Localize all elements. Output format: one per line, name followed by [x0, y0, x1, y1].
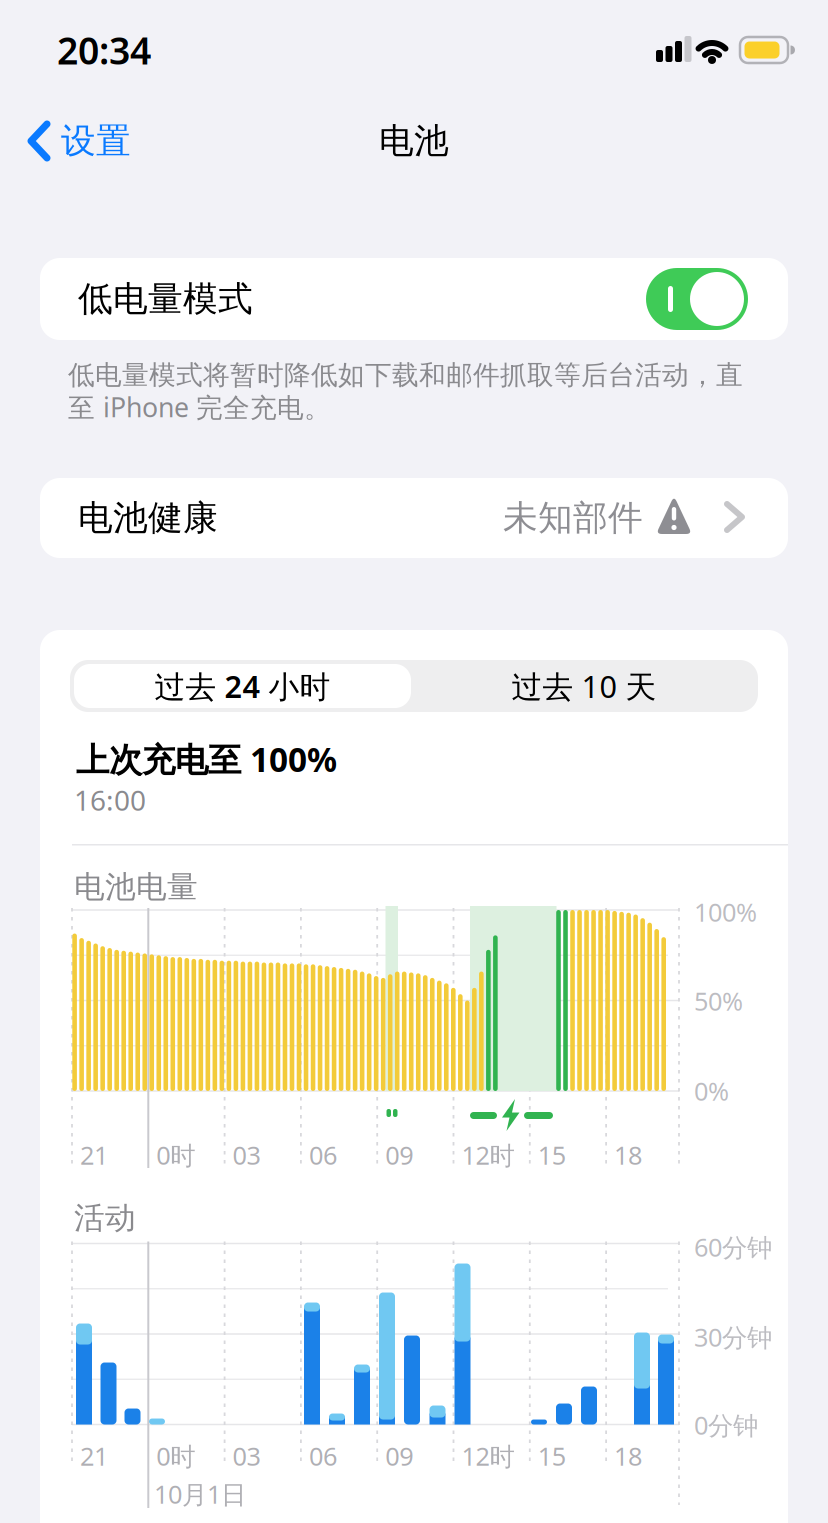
- staticText: 电池电量: [74, 868, 198, 906]
- staticText: 0时: [156, 1138, 195, 1172]
- button[interactable]: 过去 24 小时: [74, 664, 411, 708]
- staticText: 03: [233, 1439, 261, 1473]
- staticText: 18: [614, 1439, 642, 1473]
- staticText: 过去 24 小时: [154, 666, 330, 706]
- staticText: 15: [538, 1138, 566, 1172]
- staticText: 上次充电至 100%: [76, 737, 337, 781]
- staticText: 过去 10 天: [511, 666, 656, 706]
- button[interactable]: 设置: [27, 120, 131, 162]
- staticText: 12时: [461, 1138, 514, 1172]
- staticText: 06: [309, 1138, 337, 1172]
- staticText: 电池健康: [78, 497, 218, 539]
- staticText: 50%: [694, 984, 743, 1018]
- staticText: 设置: [61, 120, 131, 162]
- button[interactable]: 过去 10 天: [415, 664, 752, 708]
- staticText: 60分钟: [694, 1230, 772, 1264]
- staticText: 活动: [74, 1199, 136, 1237]
- staticText: 0分钟: [694, 1408, 758, 1442]
- staticText: 15: [538, 1439, 566, 1473]
- staticText: 低电量模式将暂时降低如下载和邮件抓取等后台活动，直: [68, 359, 743, 391]
- staticText: 至 iPhone 完全充电。: [68, 389, 331, 425]
- staticText: 30分钟: [694, 1320, 772, 1354]
- button[interactable]: 电池健康: [40, 478, 788, 558]
- staticText: 100%: [694, 895, 757, 929]
- staticText: 10月1日: [154, 1477, 246, 1511]
- staticText: 18: [614, 1138, 642, 1172]
- button[interactable]: 低电量模式: [646, 268, 748, 330]
- staticText: 低电量模式: [78, 278, 253, 320]
- staticText: 06: [309, 1439, 337, 1473]
- staticText: 21: [80, 1138, 108, 1172]
- staticText: 21: [80, 1439, 108, 1473]
- staticText: 电池: [379, 120, 449, 162]
- staticText: 03: [233, 1138, 261, 1172]
- staticText: 12时: [461, 1439, 514, 1473]
- staticText: 未知部件: [503, 497, 643, 539]
- staticText: 0时: [156, 1439, 195, 1473]
- staticText: 0%: [694, 1074, 729, 1108]
- staticText: 09: [385, 1138, 413, 1172]
- staticText: 09: [385, 1439, 413, 1473]
- staticText: 20:34: [57, 25, 151, 75]
- staticText: 16:00: [74, 781, 146, 819]
